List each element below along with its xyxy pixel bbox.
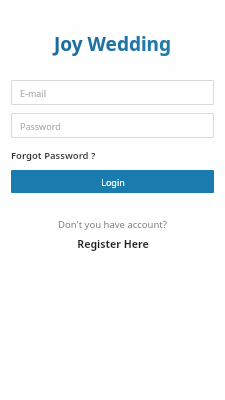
staticText: Don't you have account? — [58, 218, 167, 231]
staticText: Forgot Password ? — [11, 149, 96, 162]
button[interactable]: Login — [11, 170, 214, 193]
button[interactable]: Password — [11, 113, 214, 138]
button[interactable]: Register Here — [11, 237, 214, 251]
staticText: Joy Wedding — [54, 31, 171, 57]
staticText: Login — [101, 176, 125, 188]
staticText: Register Here — [77, 237, 149, 251]
button[interactable]: E-mail — [11, 80, 214, 105]
button[interactable]: Forgot Password ? — [11, 149, 214, 162]
staticText: Password — [20, 120, 61, 132]
staticText: E-mail — [20, 87, 47, 99]
